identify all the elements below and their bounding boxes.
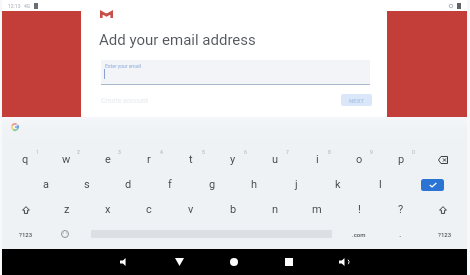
- button[interactable]: ?123: [5, 222, 46, 246]
- staticText: 7: [286, 149, 289, 155]
- staticText: y: [230, 153, 236, 166]
- staticText: ?: [398, 203, 404, 216]
- staticText: a: [43, 178, 49, 191]
- staticText: s: [84, 178, 90, 191]
- button[interactable]: Create account: [99, 95, 151, 107]
- button[interactable]: Backspace: [422, 147, 464, 172]
- staticText: Enter your email: [105, 63, 141, 69]
- button[interactable]: p: [380, 147, 422, 172]
- staticText: 6: [244, 149, 247, 155]
- button[interactable]: y: [212, 147, 254, 172]
- staticText: r: [147, 153, 151, 166]
- staticText: j: [295, 178, 298, 191]
- staticText: 0: [412, 149, 415, 155]
- staticText: k: [335, 178, 341, 191]
- staticText: n: [272, 203, 279, 216]
- button[interactable]: u: [254, 147, 296, 172]
- button[interactable]: Enter: [421, 179, 444, 191]
- button[interactable]: i: [296, 147, 338, 172]
- staticText: u: [272, 153, 279, 166]
- staticText: 4G: [24, 3, 31, 9]
- button[interactable]: n: [254, 197, 296, 222]
- button[interactable]: o: [338, 147, 380, 172]
- staticText: ?123: [438, 231, 452, 238]
- staticText: 1: [36, 149, 39, 155]
- staticText: 8: [328, 149, 331, 155]
- button[interactable]: f: [149, 172, 191, 197]
- button[interactable]: r: [128, 147, 170, 172]
- button[interactable]: g: [191, 172, 233, 197]
- button[interactable]: Recents: [278, 251, 300, 273]
- staticText: i: [316, 153, 319, 166]
- staticText: NEXT: [349, 97, 365, 104]
- staticText: p: [398, 153, 405, 166]
- staticText: 4: [160, 149, 163, 155]
- staticText: x: [105, 203, 111, 216]
- button[interactable]: j: [275, 172, 317, 197]
- button[interactable]: d: [107, 172, 149, 197]
- staticText: q: [22, 153, 29, 166]
- button[interactable]: !: [338, 197, 380, 222]
- button[interactable]: Shift: [5, 197, 46, 222]
- button[interactable]: s: [66, 172, 107, 197]
- button[interactable]: Back: [168, 251, 190, 273]
- staticText: 5: [202, 149, 205, 155]
- button[interactable]: .com: [342, 222, 375, 246]
- staticText: w: [62, 153, 71, 166]
- button[interactable]: a: [25, 172, 66, 197]
- button[interactable]: Volume up: [333, 251, 355, 273]
- staticText: e: [105, 153, 111, 166]
- button[interactable]: Volume down: [113, 251, 135, 273]
- staticText: 3: [118, 149, 121, 155]
- button[interactable]: w: [46, 147, 87, 172]
- button[interactable]: ?123: [426, 222, 464, 246]
- button[interactable]: Home: [223, 251, 245, 273]
- button[interactable]: x: [87, 197, 128, 222]
- button[interactable]: NEXT: [341, 94, 372, 106]
- button[interactable]: z: [46, 197, 87, 222]
- staticText: 12:13: [8, 3, 21, 9]
- staticText: .: [399, 229, 402, 240]
- button[interactable]: v: [170, 197, 212, 222]
- button[interactable]: h: [233, 172, 275, 197]
- staticText: .com: [352, 231, 366, 238]
- staticText: t: [189, 153, 193, 166]
- staticText: m: [312, 203, 322, 216]
- staticText: b: [230, 203, 237, 216]
- button[interactable]: b: [212, 197, 254, 222]
- staticText: g: [209, 178, 216, 191]
- button[interactable]: Shift right: [422, 197, 464, 222]
- staticText: Create account: [101, 97, 149, 105]
- staticText: ?123: [19, 231, 33, 238]
- staticText: l: [379, 178, 382, 191]
- staticText: !: [358, 203, 361, 216]
- staticText: v: [188, 203, 194, 216]
- button[interactable]: c: [128, 197, 170, 222]
- staticText: f: [168, 178, 172, 191]
- staticText: h: [251, 178, 258, 191]
- staticText: 2: [77, 149, 80, 155]
- button[interactable]: q: [5, 147, 46, 172]
- button[interactable]: e: [87, 147, 128, 172]
- staticText: d: [125, 178, 132, 191]
- button[interactable]: Enter your email: [101, 60, 370, 85]
- button[interactable]: k: [317, 172, 359, 197]
- button[interactable]: t: [170, 147, 212, 172]
- button[interactable]: m: [296, 197, 338, 222]
- staticText: c: [146, 203, 152, 216]
- button[interactable]: l: [359, 172, 401, 197]
- staticText: Add your email address: [99, 31, 256, 49]
- button[interactable]: ?: [380, 197, 422, 222]
- button[interactable]: Emoji: [46, 222, 84, 246]
- staticText: z: [64, 203, 70, 216]
- staticText: o: [356, 153, 363, 166]
- staticText: 9: [370, 149, 373, 155]
